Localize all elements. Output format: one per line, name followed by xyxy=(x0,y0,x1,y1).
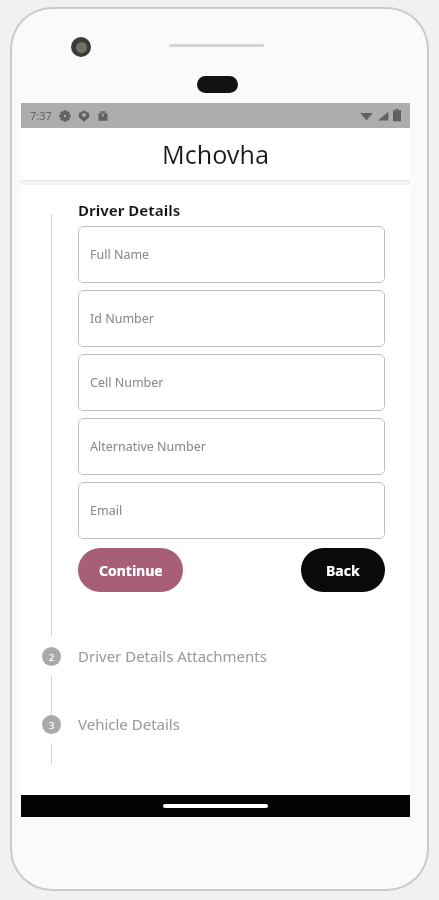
staticText: Back xyxy=(326,561,360,580)
staticText: Full Name xyxy=(90,246,150,263)
button[interactable]: Id Number xyxy=(78,290,385,347)
button[interactable]: Alternative Number xyxy=(78,418,385,475)
staticText: Alternative Number xyxy=(90,438,206,455)
staticText: Continue xyxy=(99,561,163,580)
staticText: Id Number xyxy=(90,310,154,327)
button[interactable]: 3 xyxy=(42,713,180,735)
staticText: Cell Number xyxy=(90,374,164,391)
staticText: Mchovha xyxy=(162,137,269,171)
button[interactable]: Full Name xyxy=(78,226,385,283)
button[interactable]: Cell Number xyxy=(78,354,385,411)
staticText: Driver Details Attachments xyxy=(78,646,267,666)
button[interactable]: Back xyxy=(301,548,385,592)
button[interactable]: Continue xyxy=(78,548,183,592)
staticText: Email xyxy=(90,502,123,519)
staticText: 7:37 xyxy=(30,108,52,123)
button[interactable]: 2 xyxy=(42,645,267,667)
staticText: 2 xyxy=(49,651,55,663)
staticText: Vehicle Details xyxy=(78,714,180,734)
staticText: Driver Details xyxy=(78,200,181,220)
staticText: 3 xyxy=(49,719,55,731)
button[interactable]: Email xyxy=(78,482,385,539)
